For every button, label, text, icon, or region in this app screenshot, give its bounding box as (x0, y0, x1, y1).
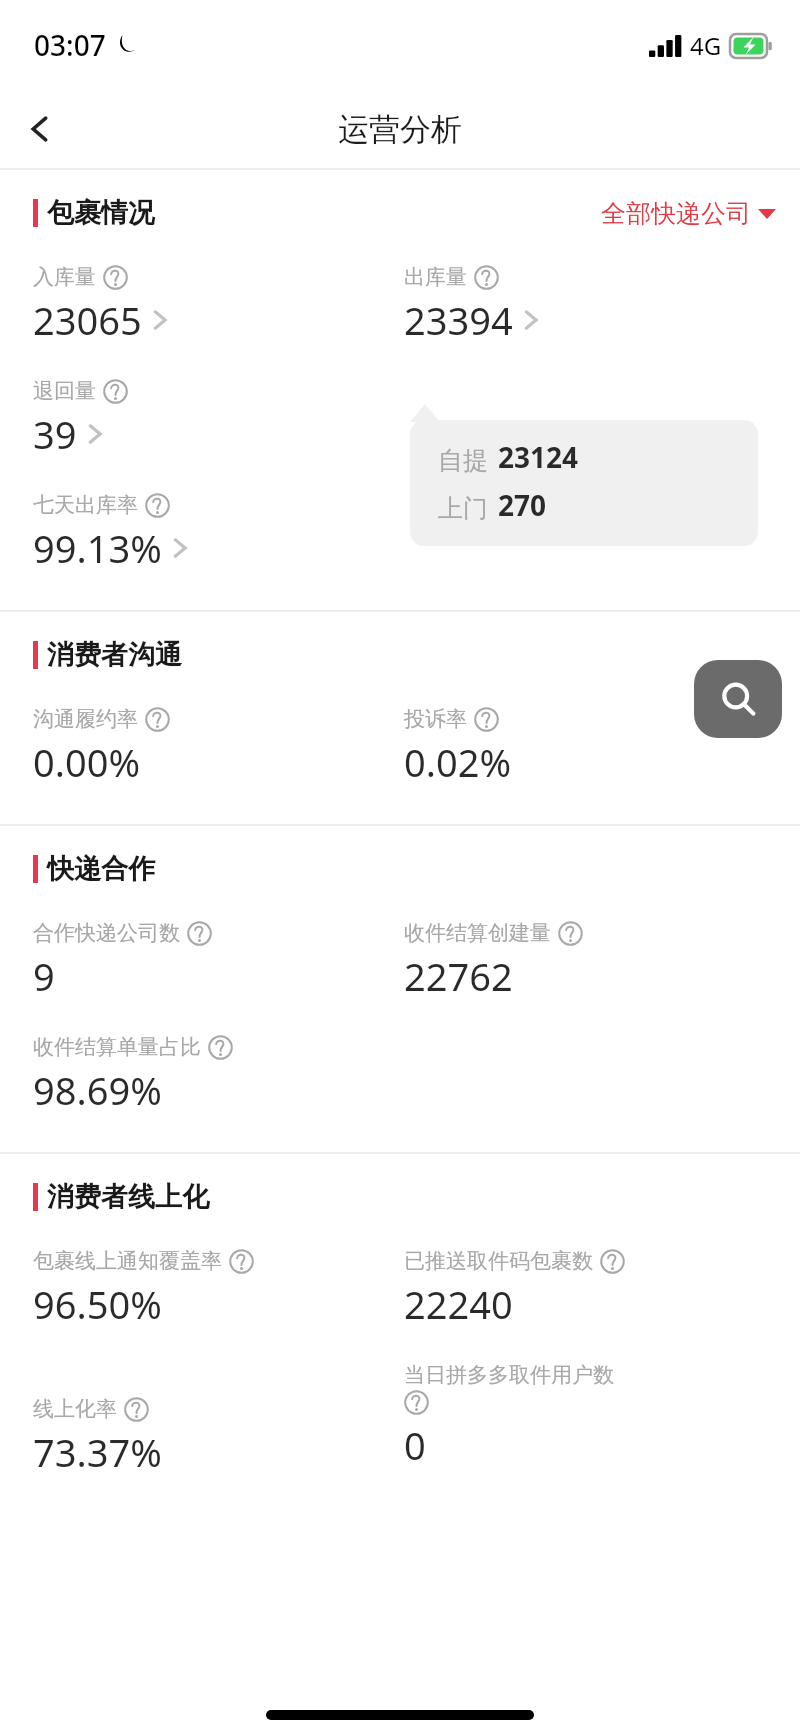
button[interactable]: 七天出库率 (33, 492, 404, 574)
button[interactable]: Search (694, 660, 782, 738)
button[interactable]: 合作快递公司数 (33, 920, 404, 1002)
staticText: 96.50% (33, 1278, 162, 1330)
staticText: 03:07 (34, 26, 106, 64)
staticText: 线上化率 (33, 1396, 117, 1422)
staticText: 自提 (438, 445, 488, 476)
staticText: 运营分析 (338, 110, 462, 149)
staticText: 23065 (33, 294, 142, 346)
staticText: 23394 (404, 294, 513, 346)
staticText: 23124 (498, 438, 579, 476)
staticText: 9 (33, 950, 55, 1002)
staticText: 98.69% (33, 1064, 162, 1116)
button[interactable]: 退回量 (33, 378, 404, 460)
staticText: 39 (33, 408, 77, 460)
staticText: 收件结算单量占比 (33, 1034, 201, 1060)
button[interactable]: 入库量 (33, 264, 404, 346)
staticText: 入库量 (33, 264, 96, 290)
staticText: 退回量 (33, 378, 96, 404)
staticText: 合作快递公司数 (33, 920, 180, 946)
staticText: 包裹情况 (47, 196, 155, 230)
button[interactable]: 收件结算创建量 (404, 920, 776, 1002)
staticText: 消费者线上化 (47, 1180, 209, 1214)
staticText: 收件结算创建量 (404, 920, 551, 946)
button[interactable]: 已推送取件码包裹数 (404, 1248, 776, 1330)
staticText: 22762 (404, 950, 513, 1002)
staticText: 99.13% (33, 522, 162, 574)
button[interactable]: 当日拼多多取件用户数 (404, 1362, 614, 1471)
staticText: 沟通履约率 (33, 706, 138, 732)
staticText: 投诉率 (404, 706, 467, 732)
staticText: 包裹线上通知覆盖率 (33, 1248, 222, 1274)
staticText: 0.02% (404, 736, 511, 788)
button[interactable]: 沟通履约率 (33, 706, 404, 788)
staticText: 4G (690, 29, 722, 62)
staticText: 快递合作 (47, 852, 155, 886)
staticText: 出库量 (404, 264, 467, 290)
staticText: 73.37% (33, 1426, 162, 1478)
staticText: 22240 (404, 1278, 513, 1330)
button[interactable]: 收件结算单量占比 (33, 1034, 404, 1116)
staticText: 七天出库率 (33, 492, 138, 518)
staticText: 当日拼多多取件用户数 (404, 1362, 614, 1388)
staticText: 全部快递公司 (601, 198, 751, 229)
button[interactable]: 包裹线上通知覆盖率 (33, 1248, 404, 1330)
staticText: 已推送取件码包裹数 (404, 1248, 593, 1274)
button[interactable]: 出库量 (404, 264, 776, 346)
staticText: 上门 (438, 493, 488, 524)
button[interactable]: 线上化率 (33, 1396, 162, 1478)
button[interactable]: Back (12, 101, 68, 157)
button[interactable]: 投诉率 (404, 706, 776, 788)
staticText: 270 (498, 486, 547, 524)
staticText: 0 (404, 1419, 426, 1471)
staticText: 消费者沟通 (47, 638, 182, 672)
staticText: 0.00% (33, 736, 140, 788)
button[interactable]: 全部快递公司 (601, 198, 776, 229)
